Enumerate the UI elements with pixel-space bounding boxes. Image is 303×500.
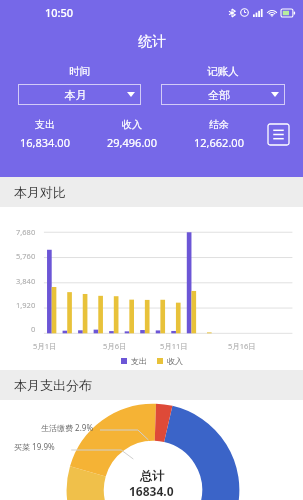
staticText: 生活缴费 2.9% bbox=[41, 422, 94, 433]
staticText: 1,920 bbox=[16, 300, 36, 310]
staticText: 本月对比 bbox=[14, 184, 66, 200]
staticText: 时间 bbox=[69, 65, 90, 78]
staticText: 5月11日 bbox=[160, 341, 188, 351]
staticText: 16834.0 bbox=[129, 483, 174, 499]
staticText: 收入 bbox=[122, 118, 142, 131]
staticText: 29,496.00 bbox=[107, 135, 157, 150]
staticText: 全部 bbox=[167, 88, 271, 102]
staticText: 支出 bbox=[35, 118, 55, 131]
button[interactable]: 全部 bbox=[161, 84, 285, 105]
staticText: 总计 bbox=[140, 468, 164, 483]
staticText: 10:50 bbox=[45, 5, 74, 20]
staticText: 0 bbox=[31, 324, 36, 334]
staticText: 12,662.00 bbox=[194, 135, 244, 150]
staticText: 记账人 bbox=[207, 65, 239, 78]
staticText: 支出 bbox=[131, 356, 147, 366]
staticText: 收入 bbox=[167, 356, 183, 366]
staticText: 16,834.00 bbox=[20, 135, 70, 150]
staticText: 本月 bbox=[24, 88, 127, 102]
staticText: 统计 bbox=[138, 33, 166, 51]
staticText: 5,760 bbox=[16, 251, 36, 261]
staticText: 结余 bbox=[209, 118, 229, 131]
staticText: 5月16日 bbox=[228, 341, 256, 351]
button[interactable]: 本月 bbox=[18, 84, 141, 105]
staticText: 7,680 bbox=[16, 227, 36, 237]
staticText: 买菜 19.9% bbox=[14, 441, 55, 452]
button[interactable]: Menu bbox=[262, 118, 294, 150]
staticText: 3,840 bbox=[16, 276, 36, 286]
staticText: 本月支出分布 bbox=[14, 377, 92, 393]
staticText: 5月6日 bbox=[103, 341, 127, 351]
staticText: 5月1日 bbox=[33, 341, 57, 351]
